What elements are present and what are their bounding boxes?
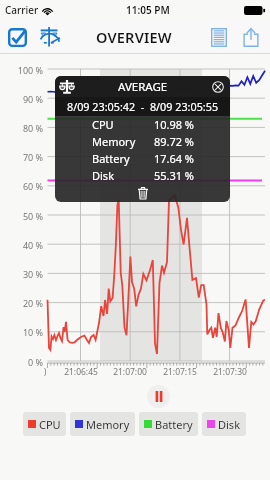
staticText: 11:05 PM	[126, 3, 170, 17]
staticText: )	[44, 366, 47, 377]
staticText: Memory	[86, 417, 130, 432]
staticText: AVERAGE	[118, 79, 168, 95]
staticText: Disk	[218, 417, 241, 432]
button[interactable]: CPU	[23, 412, 66, 436]
staticText: 55.31 %	[106, 168, 194, 183]
staticText: 89.72 %	[106, 134, 194, 149]
button[interactable]: Share	[238, 24, 264, 50]
staticText: Memory	[92, 134, 136, 149]
button[interactable]: Log	[206, 24, 232, 50]
staticText: 30 %	[0, 268, 43, 280]
staticText: 40 %	[0, 239, 43, 251]
button[interactable]: Disk	[202, 412, 246, 436]
staticText: 90 %	[0, 93, 43, 105]
staticText: 50 %	[0, 210, 43, 222]
staticText: 20 %	[0, 297, 43, 309]
button[interactable]: Benchmark	[36, 24, 62, 50]
staticText: 8/09 23:05:42 - 8/09 23:05:55	[67, 99, 219, 114]
staticText: CPU	[92, 117, 114, 132]
button[interactable]: Battery	[139, 412, 198, 436]
staticText: Battery	[92, 151, 130, 166]
staticText: 100 %	[0, 64, 43, 76]
staticText: 21:06:45	[59, 366, 103, 378]
staticText: 70 %	[0, 151, 43, 163]
staticText: 80 %	[0, 122, 43, 134]
button[interactable]: Close	[210, 79, 226, 95]
staticText: Disk	[92, 168, 115, 183]
staticText: 10 %	[0, 326, 43, 338]
staticText: 21:07:15	[158, 366, 202, 378]
staticText: OVERVIEW	[96, 27, 172, 47]
staticText: 10.98 %	[106, 117, 194, 132]
staticText: Battery	[155, 417, 193, 432]
button[interactable]: Select	[4, 24, 30, 50]
staticText: 60 %	[0, 180, 43, 192]
button[interactable]: Delete	[134, 184, 152, 202]
staticText: CPU	[39, 417, 61, 432]
button[interactable]: Pause	[147, 385, 170, 408]
staticText: Carrier	[5, 3, 39, 17]
staticText: 0 %	[0, 356, 43, 368]
button[interactable]: Memory	[70, 412, 135, 436]
staticText: 21:07:30	[208, 366, 252, 378]
staticText: 21:07:00	[108, 366, 152, 378]
staticText: 17.64 %	[106, 151, 194, 166]
